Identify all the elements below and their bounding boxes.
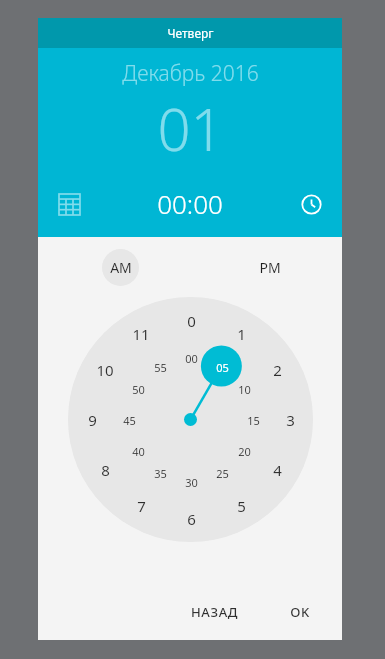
button[interactable]: PM — [251, 249, 288, 286]
staticText: 3 — [286, 410, 295, 430]
button[interactable]: Четверг — [38, 18, 342, 48]
staticText: 0 — [187, 311, 196, 331]
staticText: 20 — [238, 444, 251, 459]
staticText: AM — [110, 258, 132, 277]
button[interactable]: 0 — [68, 297, 313, 542]
button[interactable]: Switch to clock — [294, 187, 328, 221]
staticText: 45 — [123, 413, 136, 428]
staticText: Четверг — [167, 25, 214, 41]
staticText: НАЗАД — [191, 603, 238, 621]
staticText: 40 — [132, 444, 145, 459]
button[interactable]: AM — [102, 249, 139, 286]
staticText: 05 — [216, 360, 229, 375]
button[interactable]: НАЗАД — [179, 593, 250, 631]
staticText: PM — [259, 258, 281, 277]
staticText: 10 — [238, 382, 251, 397]
staticText: 6 — [187, 509, 196, 529]
staticText: 15 — [247, 413, 260, 428]
button[interactable]: OK — [278, 593, 322, 631]
staticText: 10 — [96, 360, 114, 380]
staticText: 5 — [237, 496, 246, 516]
staticText: 7 — [137, 496, 146, 516]
staticText: 00:00 — [157, 186, 223, 221]
staticText: 00 — [185, 351, 198, 366]
button[interactable]: 00:00 — [157, 186, 223, 221]
staticText: 50 — [132, 382, 145, 397]
staticText: OK — [290, 603, 310, 621]
button[interactable]: Switch to calendar — [52, 187, 86, 221]
staticText: 11 — [132, 324, 150, 344]
staticText: 2 — [273, 360, 282, 380]
staticText: 25 — [216, 466, 229, 481]
staticText: 55 — [154, 360, 167, 375]
staticText: 4 — [273, 460, 282, 480]
button[interactable]: Декабрь 2016 — [122, 59, 259, 88]
staticText: 35 — [154, 466, 167, 481]
staticText: 30 — [185, 475, 198, 490]
staticText: 8 — [101, 460, 110, 480]
staticText: 9 — [88, 410, 97, 430]
staticText: Декабрь 2016 — [122, 59, 259, 88]
staticText: 01 — [157, 89, 224, 168]
button[interactable]: 01 — [157, 89, 224, 168]
staticText: 1 — [237, 324, 246, 344]
